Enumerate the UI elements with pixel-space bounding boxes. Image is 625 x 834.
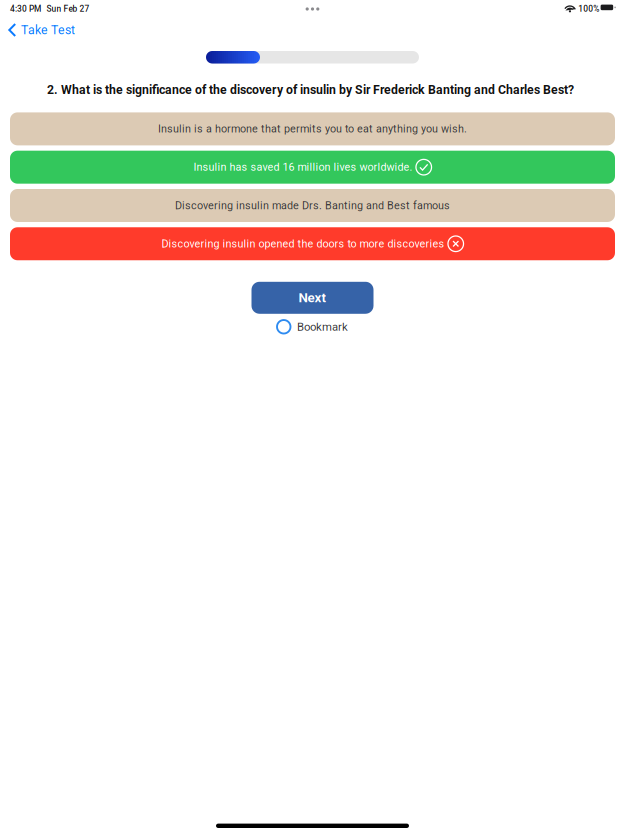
- button[interactable]: Bookmark: [277, 317, 348, 337]
- staticText: 4:30 PM: [10, 4, 41, 14]
- button[interactable]: Discovering insulin opened the doors to …: [10, 227, 615, 260]
- staticText: Sun Feb 27: [46, 4, 89, 14]
- staticText: Insulin has saved 16 million lives world…: [193, 161, 412, 173]
- staticText: Discovering insulin opened the doors to …: [161, 237, 444, 250]
- staticText: Bookmark: [297, 320, 348, 333]
- button[interactable]: Discovering insulin made Drs. Banting an…: [10, 189, 615, 222]
- button[interactable]: Next: [251, 282, 373, 314]
- button[interactable]: Insulin is a hormone that permits you to…: [10, 112, 615, 145]
- staticText: Discovering insulin made Drs. Banting an…: [175, 199, 450, 212]
- button[interactable]: Take Test: [0, 18, 81, 42]
- staticText: Next: [298, 290, 326, 306]
- staticText: 2. What is the significance of the disco…: [47, 82, 574, 97]
- staticText: Take Test: [21, 23, 75, 37]
- staticText: 100%: [578, 4, 599, 14]
- button[interactable]: Insulin has saved 16 million lives world…: [10, 151, 615, 184]
- staticText: Insulin is a hormone that permits you to…: [158, 122, 467, 135]
